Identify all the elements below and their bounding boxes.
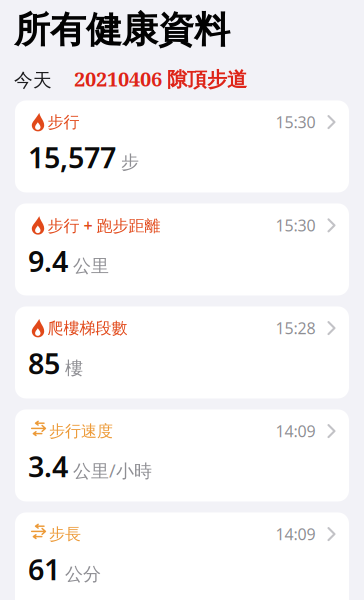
staticText: 15,577 [28,138,116,177]
staticText: 85 [28,344,60,383]
staticText: 20210406 隙頂步道 [74,65,247,92]
staticText: 步長 [49,524,81,544]
staticText: 14:09 [275,420,315,442]
button[interactable]: 步行 + 跑步距離 [15,203,349,295]
staticText: 步 [121,151,139,174]
staticText: 14:09 [275,523,315,545]
button[interactable]: 爬樓梯段數 [15,306,349,398]
staticText: 公分 [65,563,101,586]
button[interactable]: 步行 [15,100,349,192]
staticText: 61 [28,550,60,589]
staticText: 步行速度 [49,421,113,441]
button[interactable]: 步長 [15,512,349,600]
staticText: 公里 [73,255,109,277]
staticText: 所有健康資料 [14,8,230,52]
staticText: 樓 [65,357,83,380]
staticText: 步行 [47,112,79,132]
staticText: 爬樓梯段數 [47,318,127,338]
staticText: 15:30 [275,111,315,133]
staticText: 今天 [14,69,52,92]
staticText: 9.4 [28,241,68,280]
staticText: 15:30 [275,215,315,236]
button[interactable]: 步行速度 [15,409,349,501]
staticText: 15:28 [275,317,315,339]
staticText: 公里/小時 [73,458,152,483]
staticText: 3.4 [28,447,68,486]
staticText: 步行 + 跑步距離 [47,214,160,236]
